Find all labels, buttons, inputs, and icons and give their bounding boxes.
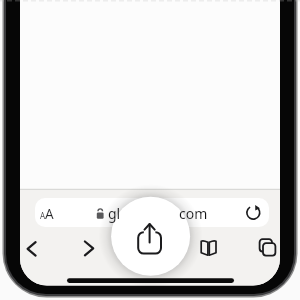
- button[interactable]: [256, 237, 278, 259]
- button[interactable]: [79, 238, 101, 260]
- staticText: com: [179, 204, 208, 223]
- staticText: gl: [108, 204, 121, 223]
- button[interactable]: [35, 198, 268, 227]
- staticText: AA: [40, 205, 54, 223]
- button[interactable]: [22, 238, 44, 260]
- button[interactable]: [198, 238, 220, 260]
- button[interactable]: [111, 197, 190, 276]
